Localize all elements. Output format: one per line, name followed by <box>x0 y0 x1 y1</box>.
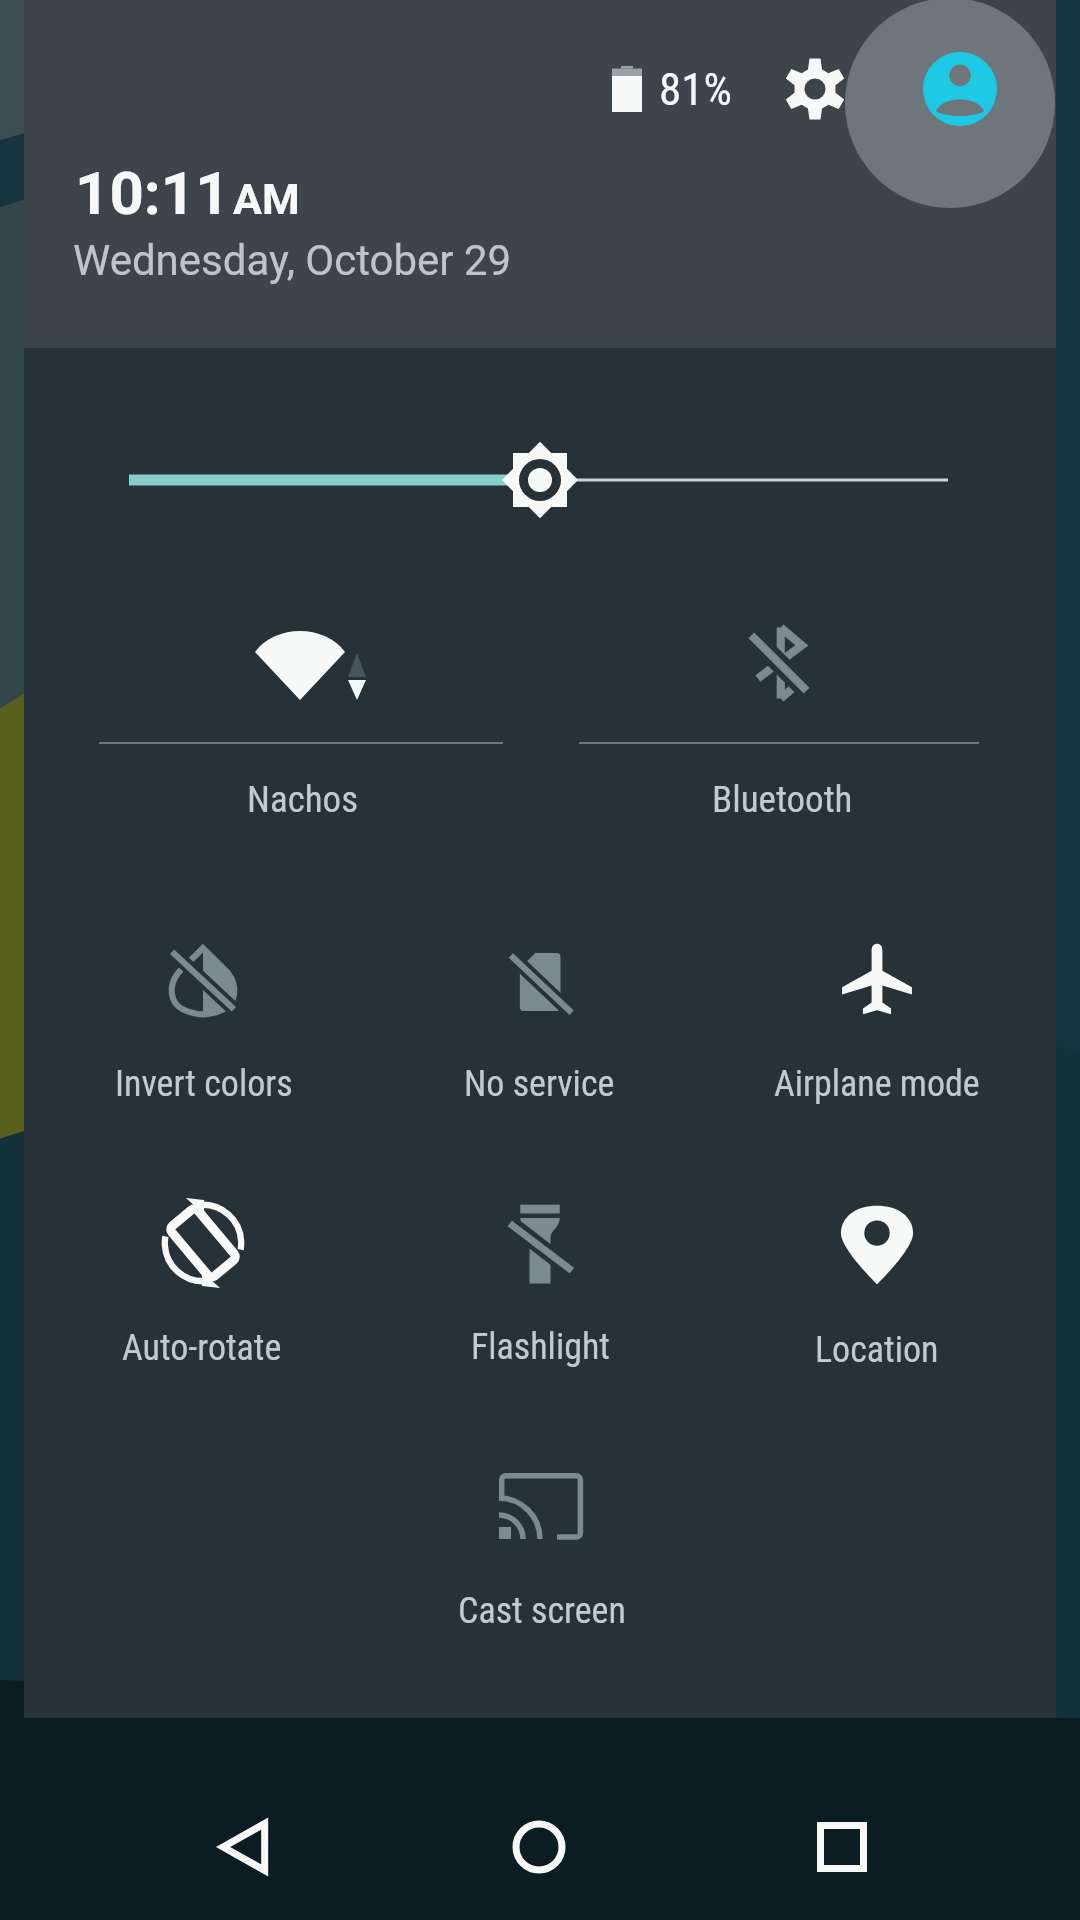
button[interactable] <box>709 904 1045 1114</box>
button[interactable] <box>709 1170 1045 1380</box>
staticText: Airplane mode <box>774 1063 980 1105</box>
staticText: Cast screen <box>458 1590 626 1632</box>
staticText: Wednesday, October 29 <box>73 236 512 285</box>
button[interactable] <box>35 1168 371 1378</box>
staticText: 10:11 <box>75 158 230 228</box>
staticText: AM <box>233 174 300 224</box>
button[interactable]: Brightness <box>100 430 980 530</box>
button[interactable]: Settings <box>763 37 867 141</box>
button[interactable] <box>557 592 1001 832</box>
staticText: Flashlight <box>471 1326 610 1368</box>
button[interactable] <box>372 904 708 1114</box>
button[interactable]: Recent apps <box>767 1772 917 1920</box>
button[interactable] <box>35 904 371 1114</box>
button[interactable]: Back <box>172 1772 322 1920</box>
staticText: No service <box>464 1063 615 1105</box>
staticText: Invert colors <box>115 1063 293 1105</box>
staticText: 81% <box>659 63 732 116</box>
button[interactable]: Home <box>464 1772 614 1920</box>
button[interactable] <box>372 1167 708 1377</box>
staticText: Nachos <box>247 778 359 821</box>
button[interactable] <box>77 592 525 832</box>
button[interactable]: User profile <box>896 25 1024 153</box>
staticText: Auto-rotate <box>122 1327 282 1369</box>
staticText: Bluetooth <box>712 778 853 821</box>
button[interactable] <box>373 1431 709 1641</box>
staticText: Location <box>815 1329 939 1371</box>
